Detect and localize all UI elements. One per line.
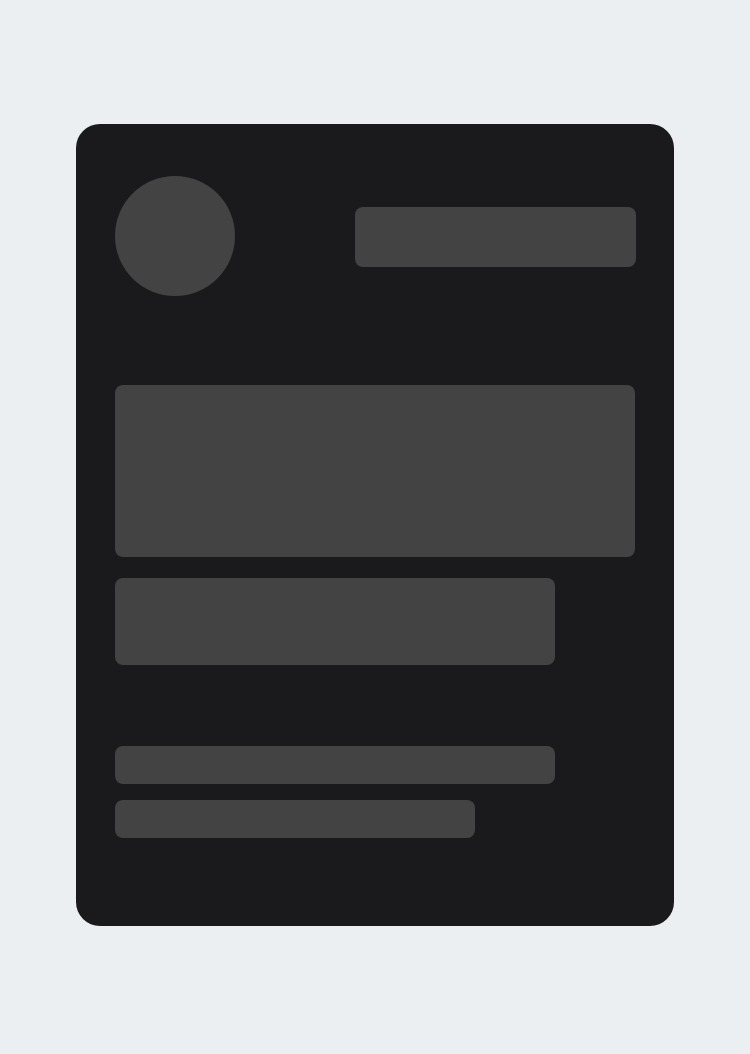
button[interactable]: Loading content: [76, 124, 674, 926]
button[interactable]: Avatar placeholder: [115, 176, 235, 296]
